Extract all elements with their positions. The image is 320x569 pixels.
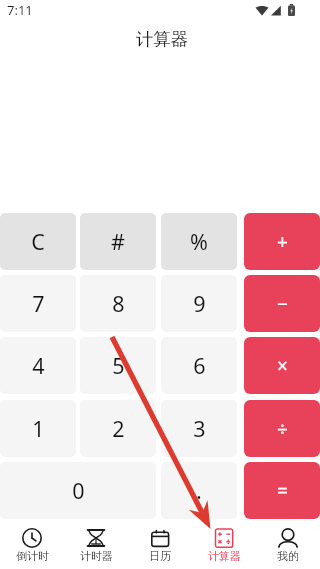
button[interactable]: C: [0, 213, 76, 270]
staticText: 倒计时: [16, 549, 49, 563]
button[interactable]: 5: [80, 337, 156, 394]
staticText: ×: [277, 353, 288, 379]
button[interactable]: 2: [80, 400, 156, 457]
other: Timer: [86, 528, 106, 548]
button[interactable]: −: [244, 275, 320, 332]
button[interactable]: ÷: [244, 400, 320, 457]
staticText: 6: [193, 351, 206, 380]
button[interactable]: .: [161, 462, 237, 519]
staticText: %: [190, 227, 208, 256]
other: Calendar: [150, 528, 170, 548]
staticText: 3: [193, 414, 206, 443]
button[interactable]: 0: [0, 462, 156, 519]
button[interactable]: 9: [161, 275, 237, 332]
other: Countdown: [22, 528, 42, 548]
staticText: ÷: [277, 416, 288, 442]
button[interactable]: 4: [0, 337, 76, 394]
button[interactable]: %: [161, 213, 237, 270]
button[interactable]: Countdown: [0, 519, 64, 569]
staticText: 我的: [277, 549, 299, 563]
other: Profile: [278, 528, 298, 548]
button[interactable]: 6: [161, 337, 237, 394]
staticText: 2: [112, 414, 125, 443]
staticText: 0: [72, 476, 85, 505]
button[interactable]: Profile: [256, 519, 320, 569]
button[interactable]: 1: [0, 400, 76, 457]
button[interactable]: +: [244, 213, 320, 270]
staticText: 计算器: [136, 28, 188, 50]
button[interactable]: ×: [244, 337, 320, 394]
other: Calculator: [214, 528, 234, 548]
staticText: 1: [32, 414, 45, 443]
staticText: C: [31, 227, 45, 256]
button[interactable]: 7: [0, 275, 76, 332]
staticText: +: [277, 229, 288, 255]
staticText: 计时器: [80, 549, 113, 563]
staticText: 计算器: [208, 549, 241, 563]
button[interactable]: 3: [161, 400, 237, 457]
staticText: 日历: [149, 549, 171, 563]
button[interactable]: =: [244, 462, 320, 519]
staticText: −: [277, 291, 288, 317]
button[interactable]: 8: [80, 275, 156, 332]
staticText: #: [111, 227, 125, 256]
staticText: .: [196, 476, 202, 505]
staticText: 7: [32, 289, 45, 318]
staticText: 8: [112, 289, 125, 318]
staticText: 5: [112, 351, 125, 380]
button[interactable]: Timer: [64, 519, 128, 569]
button[interactable]: #: [80, 213, 156, 270]
button[interactable]: Calculator: [192, 519, 256, 569]
staticText: 4: [32, 351, 45, 380]
button[interactable]: Calendar: [128, 519, 192, 569]
staticText: 9: [193, 289, 206, 318]
staticText: 7:11: [7, 1, 33, 19]
staticText: =: [277, 478, 288, 504]
